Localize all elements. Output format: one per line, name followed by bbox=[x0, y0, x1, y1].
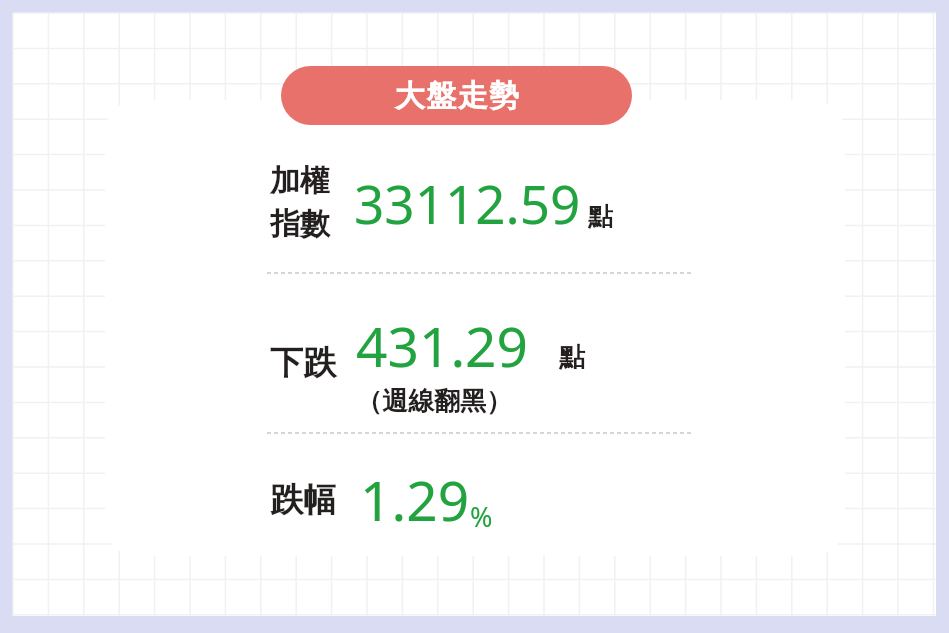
staticText: 1.29 bbox=[360, 462, 470, 537]
staticText: 加權 bbox=[270, 162, 330, 200]
staticText: 431.29 bbox=[356, 308, 529, 383]
staticText: （週線翻黑） bbox=[356, 385, 512, 418]
staticText: 33112.59 bbox=[354, 167, 581, 239]
staticText: 指數 bbox=[270, 205, 330, 243]
staticText: 大盤走勢 bbox=[394, 77, 520, 115]
staticText: 點 bbox=[559, 341, 585, 374]
staticText: 跌幅 bbox=[270, 479, 336, 521]
button[interactable]: 大盤走勢 bbox=[281, 66, 632, 125]
staticText: 點 bbox=[588, 201, 613, 232]
staticText: % bbox=[470, 498, 493, 535]
staticText: 下跌 bbox=[270, 342, 336, 384]
